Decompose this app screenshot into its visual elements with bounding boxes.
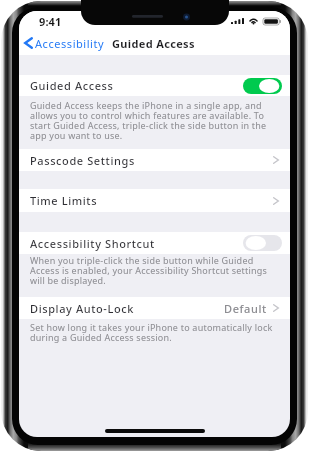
staticText: Accessibility	[35, 36, 105, 51]
staticText: Accessibility Shortcut	[30, 236, 155, 251]
staticText: Display Auto-Lock	[30, 301, 135, 316]
staticText: Default	[224, 301, 267, 316]
button[interactable]: Guided Access toggle	[243, 78, 282, 94]
button[interactable]: Accessibility Shortcut toggle	[243, 235, 282, 251]
staticText: Set how long it takes your iPhone to aut…	[30, 321, 273, 343]
button[interactable]: Time Limits	[19, 189, 290, 212]
staticText: 9:41	[39, 14, 62, 29]
staticText: Time Limits	[30, 193, 98, 208]
button[interactable]: Passcode Settings	[19, 149, 290, 171]
staticText: Guided Access	[112, 36, 195, 51]
button[interactable]: Display Auto-Lock	[19, 297, 290, 319]
button[interactable]: Guided Access	[19, 75, 290, 96]
staticText: Passcode Settings	[30, 153, 135, 168]
staticText: Guided Access keeps the iPhone in a sing…	[30, 99, 267, 141]
button[interactable]: Accessibility	[21, 34, 108, 52]
staticText: Guided Access	[30, 78, 114, 93]
button[interactable]: Accessibility Shortcut	[19, 232, 290, 254]
staticText: When you triple-click the side button wh…	[30, 254, 268, 286]
